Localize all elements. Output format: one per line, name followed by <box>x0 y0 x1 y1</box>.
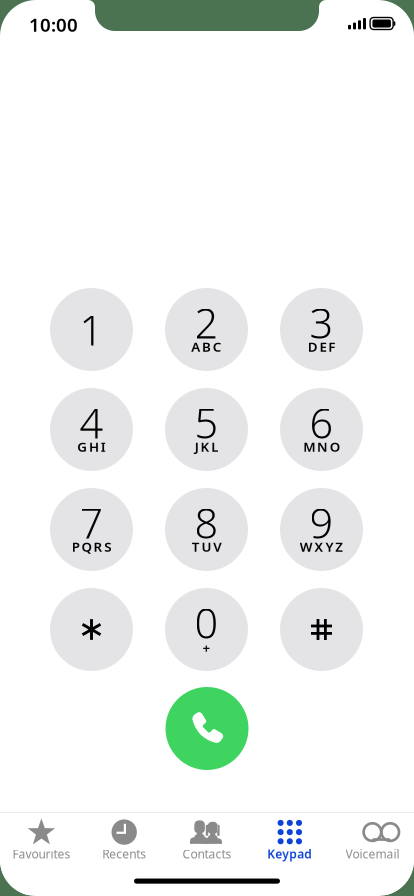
staticText: 6 <box>309 395 333 450</box>
button[interactable]: 9 <box>280 488 363 571</box>
staticText: 8 <box>194 495 218 550</box>
button[interactable]: Keypad <box>248 813 331 862</box>
button[interactable]: 2 <box>165 288 248 371</box>
button[interactable]: Contacts <box>166 813 248 862</box>
staticText: Keypad <box>267 846 312 862</box>
staticText: JKL <box>195 438 218 455</box>
button[interactable]: Star <box>50 588 133 671</box>
staticText: 5 <box>194 395 218 450</box>
button[interactable]: 3 <box>280 288 363 371</box>
staticText: + <box>202 639 210 656</box>
button[interactable]: Voicemail <box>331 813 414 862</box>
button[interactable]: Pound <box>280 588 363 671</box>
button[interactable]: Recents <box>83 813 166 862</box>
button[interactable]: Call <box>165 687 248 770</box>
button[interactable]: 8 <box>165 488 248 571</box>
staticText: 2 <box>194 295 218 350</box>
staticText: 7 <box>79 495 103 550</box>
staticText: MNO <box>303 438 340 455</box>
staticText: Voicemail <box>346 846 400 862</box>
button[interactable]: 0 <box>165 588 248 671</box>
staticText: WXYZ <box>300 538 343 555</box>
button[interactable]: 1 <box>50 288 133 371</box>
staticText: 9 <box>309 495 333 550</box>
button[interactable]: 6 <box>280 388 363 471</box>
staticText: TUV <box>192 538 221 555</box>
staticText: 3 <box>309 295 333 350</box>
staticText: ABC <box>191 338 222 355</box>
staticText: Favourites <box>12 846 70 862</box>
button[interactable]: 4 <box>50 388 133 471</box>
staticText: GHI <box>77 438 106 455</box>
staticText: 10:00 <box>29 12 78 37</box>
staticText: Contacts <box>182 846 231 862</box>
staticText: 0 <box>194 595 218 650</box>
button[interactable]: 7 <box>50 488 133 571</box>
button[interactable]: Favourites <box>0 813 83 862</box>
staticText: PQRS <box>72 538 111 555</box>
staticText: DEF <box>308 338 335 355</box>
staticText: 4 <box>79 395 103 450</box>
button[interactable]: 5 <box>165 388 248 471</box>
staticText: 1 <box>79 302 103 357</box>
staticText: Recents <box>102 846 146 862</box>
